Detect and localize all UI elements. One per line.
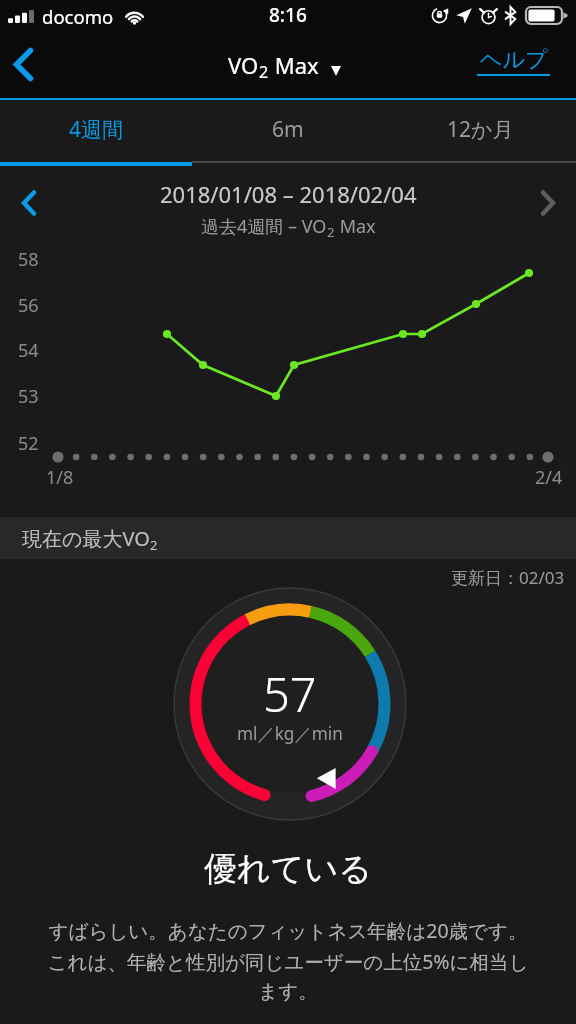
button[interactable]: Next period (520, 175, 576, 231)
staticText: 52 (18, 431, 39, 456)
staticText: 2 (327, 223, 335, 241)
staticText: 57 (263, 662, 317, 726)
button[interactable]: 6m (192, 100, 384, 163)
button[interactable]: Back (0, 36, 51, 92)
staticText: 更新日：02/03 (451, 566, 565, 589)
staticText: 過去4週間 – VO (201, 214, 327, 239)
staticText: docomo (42, 4, 114, 29)
staticText: Max (269, 50, 319, 80)
staticText: 優れている (204, 848, 373, 890)
button[interactable]: 12か月 (384, 100, 576, 163)
staticText: すばらしい。あなたのフィットネス年齢は20歳です。これは、年齢と性別が同じユーザ… (46, 917, 530, 1004)
staticText: Max (335, 214, 376, 239)
staticText: 54 (18, 338, 39, 363)
staticText: 4週間 (69, 115, 124, 144)
staticText: ヘルプ (480, 46, 548, 74)
button[interactable]: 4週間 (0, 100, 192, 163)
button[interactable]: Previous period (0, 175, 56, 231)
staticText: ml／kg／min (237, 722, 343, 745)
staticText: 12か月 (447, 115, 514, 144)
staticText: 6m (272, 115, 304, 144)
staticText: VO (228, 50, 259, 80)
staticText: 56 (18, 293, 39, 318)
button[interactable]: ヘルプ (451, 36, 576, 86)
staticText: 8:16 (269, 2, 307, 28)
staticText: 53 (18, 384, 39, 409)
staticText: 58 (18, 247, 39, 272)
staticText: 2 (259, 61, 269, 83)
staticText: 2 (150, 536, 158, 554)
staticText: 2/4 (535, 465, 563, 490)
staticText: 2018/01/08 – 2018/02/04 (160, 179, 417, 209)
staticText: 1/8 (46, 465, 74, 490)
staticText: 現在の最大VO (22, 525, 150, 552)
